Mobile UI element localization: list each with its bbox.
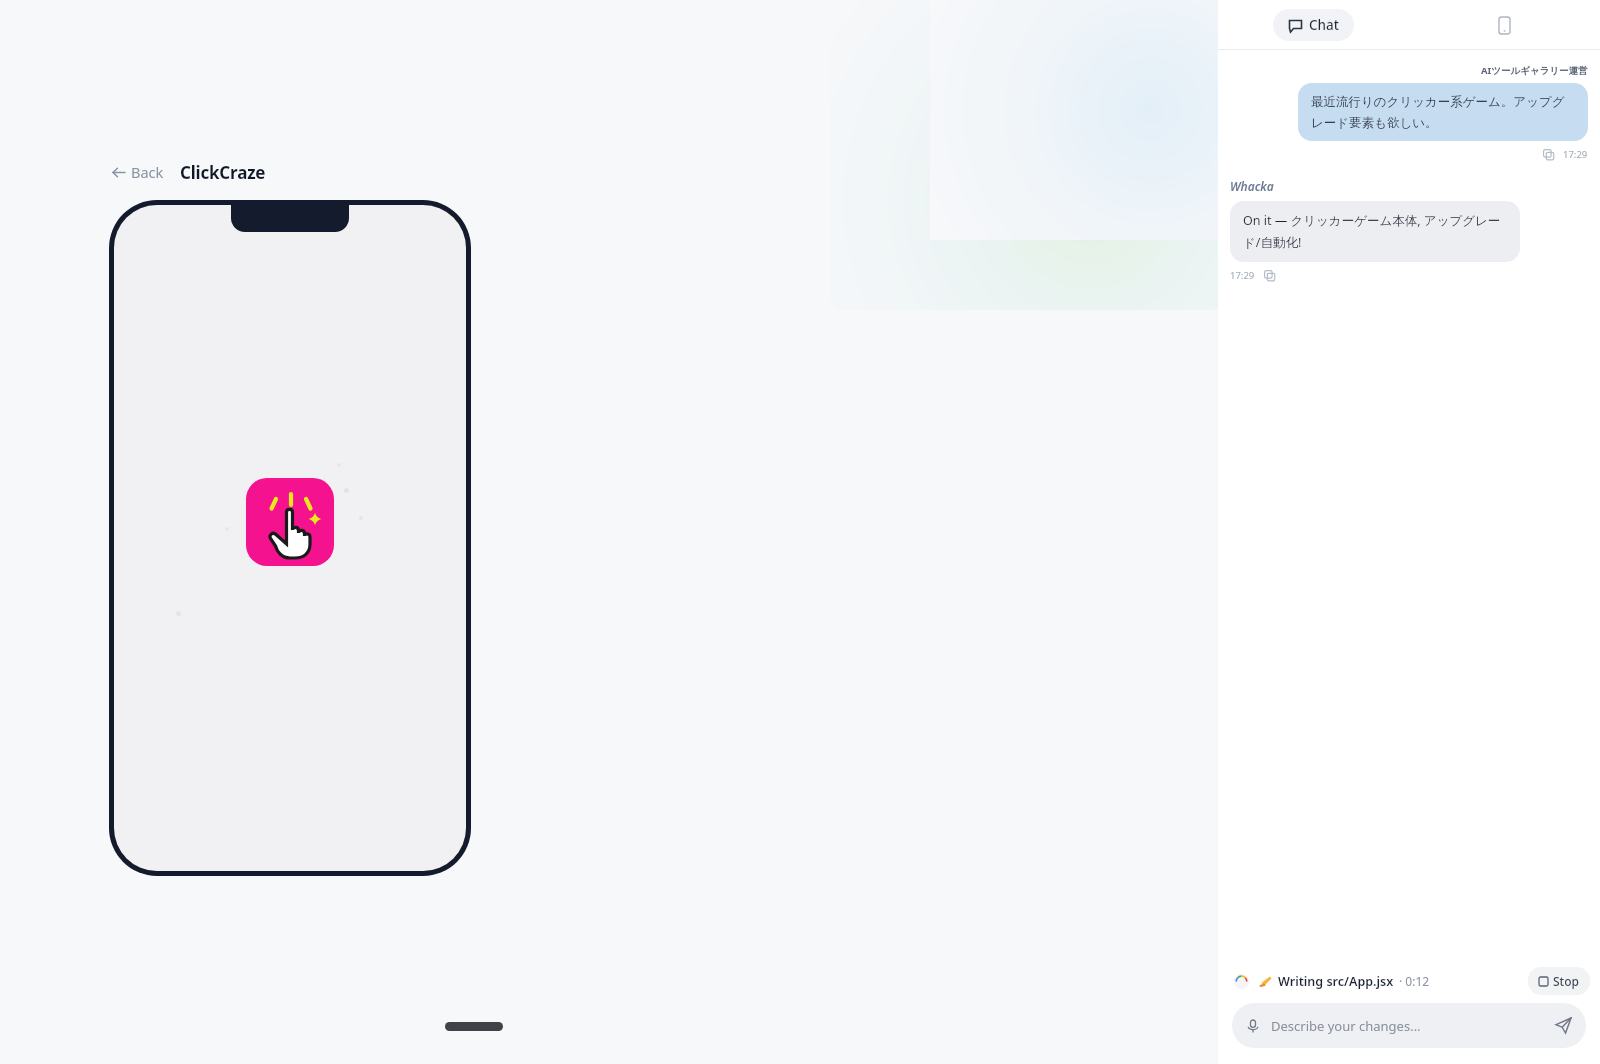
button[interactable]: Preview: [1484, 10, 1525, 41]
button[interactable]: Stop: [1528, 967, 1590, 995]
button[interactable]: On it — クリッカーゲーム本体, アップグレード/自動化!: [1230, 201, 1520, 262]
staticText: AIツールギャラリー運営: [1481, 64, 1588, 77]
staticText: Stop: [1553, 973, 1579, 989]
staticText: 17:29: [1230, 269, 1255, 282]
staticText: Describe your changes...: [1271, 1017, 1421, 1035]
button[interactable]: 最近流行りのクリッカー系ゲーム。アップグレード要素も欲しい。: [1298, 83, 1588, 141]
button[interactable]: Chat: [1273, 9, 1354, 41]
button[interactable]: Copy message: [1262, 268, 1277, 283]
button[interactable]: Back: [110, 159, 166, 185]
staticText: Whacka: [1230, 178, 1274, 194]
button[interactable]: Voice input: [1232, 1003, 1586, 1048]
staticText: 最近流行りのクリッカー系ゲーム。アップグレード要素も欲しい。: [1311, 94, 1575, 130]
staticText: 17:29: [1563, 148, 1588, 161]
staticText: · 0:12: [1399, 973, 1430, 989]
staticText: ClickCraze: [180, 161, 266, 184]
button[interactable]: ClickCraze app icon: [246, 478, 334, 566]
button[interactable]: Copy message: [1541, 147, 1556, 162]
other: Send: [1555, 1017, 1572, 1034]
other: Voice input: [1246, 1019, 1260, 1033]
staticText: On it — クリッカーゲーム本体, アップグレード/自動化!: [1243, 212, 1507, 251]
staticText: Back: [131, 162, 164, 182]
staticText: Chat: [1309, 16, 1339, 34]
staticText: Writing src/App.jsx: [1278, 973, 1394, 990]
